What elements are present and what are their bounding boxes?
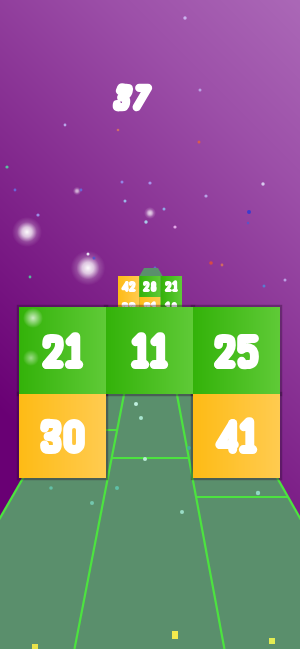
button[interactable]: Game board [0, 0, 300, 649]
